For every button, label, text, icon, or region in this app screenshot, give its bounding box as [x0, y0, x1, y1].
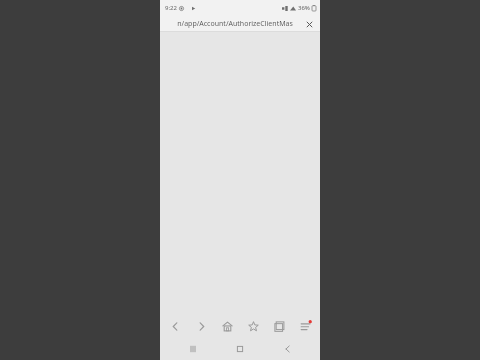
button[interactable]: Recents — [178, 339, 208, 359]
button[interactable]: Home — [225, 339, 255, 359]
button[interactable]: Back — [273, 339, 303, 359]
staticText: 9:22 — [165, 4, 177, 12]
button[interactable]: Close tab — [303, 18, 315, 30]
button[interactable]: Back — [164, 315, 186, 337]
staticText: 36% — [298, 4, 310, 12]
button[interactable]: Forward — [190, 315, 212, 337]
button[interactable]: Bookmarks — [242, 315, 264, 337]
button[interactable]: Tabs — [268, 315, 290, 337]
button[interactable]: n/app/Account/AuthorizeClientMas — [177, 19, 293, 29]
staticText: n/app/Account/AuthorizeClientMas — [177, 19, 293, 29]
button[interactable]: Menu — [294, 315, 316, 337]
button[interactable]: Home — [216, 315, 238, 337]
